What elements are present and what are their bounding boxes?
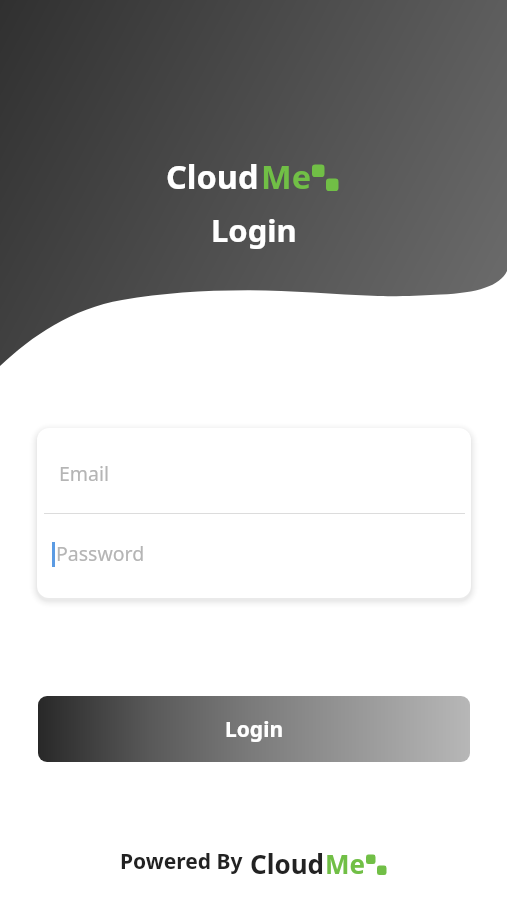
- staticText: Cloud: [250, 846, 325, 881]
- staticText: Me: [325, 846, 366, 881]
- staticText: Powered By: [120, 847, 243, 876]
- button[interactable]: Powered By: [120, 846, 388, 881]
- staticText: Me: [261, 154, 312, 198]
- staticText: Password: [56, 540, 145, 567]
- button[interactable]: Password: [37, 514, 471, 598]
- staticText: Cloud: [166, 154, 259, 198]
- other: CloudMe logo: [366, 860, 388, 881]
- button[interactable]: Login: [38, 696, 470, 762]
- staticText: Email: [59, 460, 110, 487]
- staticText: Login: [225, 715, 284, 744]
- staticText: Login: [211, 209, 297, 251]
- other: CloudMe logo: [312, 172, 340, 198]
- button[interactable]: Email: [37, 428, 471, 513]
